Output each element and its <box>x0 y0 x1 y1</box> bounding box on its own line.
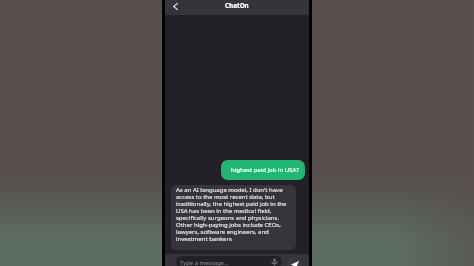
button[interactable]: As an AI language model, I don't have ac… <box>171 185 296 250</box>
staticText: Type a message... <box>180 259 270 266</box>
button[interactable]: Send <box>287 257 302 266</box>
staticText: As an AI language model, I don't have ac… <box>176 186 291 242</box>
button[interactable]: highest paid job in USA? <box>221 160 305 180</box>
button[interactable]: Voice input <box>270 257 279 266</box>
staticText: ChatOn <box>225 1 249 10</box>
staticText: highest paid job in USA? <box>231 166 299 174</box>
button[interactable]: Back <box>168 0 182 13</box>
button[interactable]: Type a message... <box>176 256 282 266</box>
